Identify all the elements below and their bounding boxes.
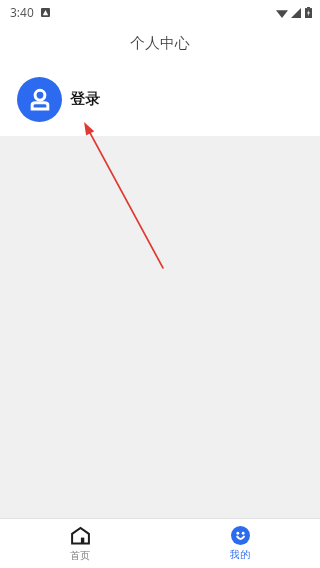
staticText: 登录 bbox=[70, 90, 100, 109]
button[interactable]: 登录 bbox=[0, 62, 320, 136]
button[interactable]: 我的 bbox=[160, 518, 320, 568]
staticText: 3:40 bbox=[10, 4, 34, 20]
staticText: 个人中心 bbox=[130, 34, 190, 53]
button[interactable]: 首页 bbox=[0, 518, 160, 568]
staticText: 我的 bbox=[230, 548, 250, 561]
staticText: 首页 bbox=[70, 549, 90, 562]
